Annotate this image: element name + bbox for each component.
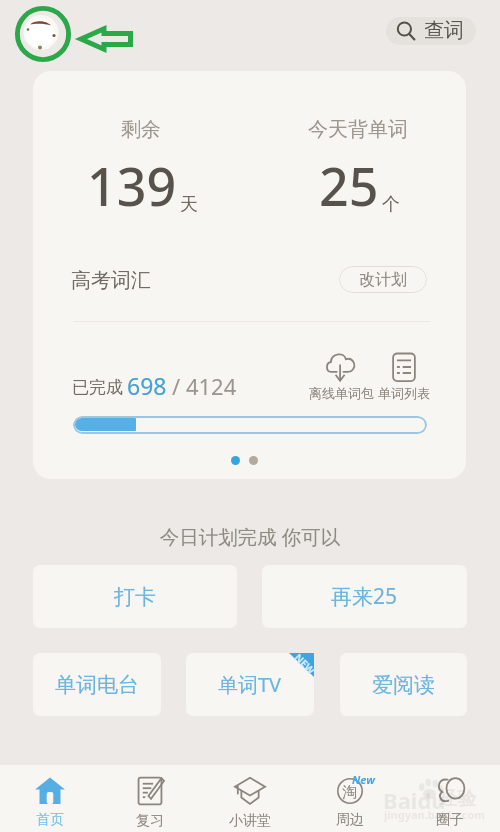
staticText: 天 (180, 193, 198, 216)
button[interactable]: Profile (14, 5, 72, 63)
staticText: 今天背单词 (308, 117, 408, 142)
staticText: 25 (319, 150, 379, 221)
staticText: 个 (382, 193, 400, 216)
staticText: 单词列表 (378, 385, 430, 401)
staticText: 离线单词包 (309, 385, 374, 401)
staticText: 单词TV (218, 671, 282, 698)
button[interactable]: 改计划 (339, 266, 427, 293)
staticText: 小讲堂 (229, 812, 271, 830)
staticText: 剩余 (121, 117, 161, 142)
button[interactable]: 再来25 (262, 565, 467, 628)
staticText: jingyan.baidu.com (384, 807, 486, 822)
button[interactable]: 单词电台 (33, 653, 161, 716)
staticText: 打卡 (114, 584, 156, 610)
button[interactable]: 复习 (100, 765, 200, 832)
staticText: / 4124 (172, 371, 237, 401)
staticText: 单词电台 (55, 672, 139, 698)
staticText: 爱阅读 (372, 672, 435, 698)
staticText: 今日计划完成 你可以 (0, 523, 500, 550)
staticText: 淘 (342, 783, 357, 802)
button[interactable]: 淘 (300, 765, 400, 832)
button[interactable]: 爱阅读 (340, 653, 467, 716)
staticText: 698 (127, 370, 167, 401)
staticText: 高考词汇 (71, 268, 151, 293)
button[interactable]: Word list (377, 352, 431, 401)
staticText: 首页 (36, 811, 64, 829)
staticText: 周边 (336, 811, 364, 829)
staticText: 复习 (136, 812, 164, 830)
staticText: 圈子 (436, 811, 464, 829)
button[interactable]: 打卡 (33, 565, 237, 628)
staticText: 经验 (438, 787, 476, 811)
staticText: 139 (87, 150, 177, 221)
staticText: 改计划 (359, 270, 407, 290)
button[interactable]: 圈子 (400, 765, 500, 832)
staticText: NEW (292, 651, 318, 677)
button[interactable]: Offline word packs (308, 352, 374, 401)
button[interactable]: 查词 (386, 17, 476, 45)
staticText: 查词 (424, 18, 464, 43)
staticText: New (352, 772, 375, 787)
button[interactable]: 单词TV (186, 653, 314, 716)
button[interactable]: 首页 (0, 765, 100, 832)
staticText: 再来25 (331, 582, 398, 611)
button[interactable]: 小讲堂 (200, 765, 300, 832)
staticText: Baidu (383, 785, 446, 815)
staticText: 已完成 (72, 377, 123, 398)
